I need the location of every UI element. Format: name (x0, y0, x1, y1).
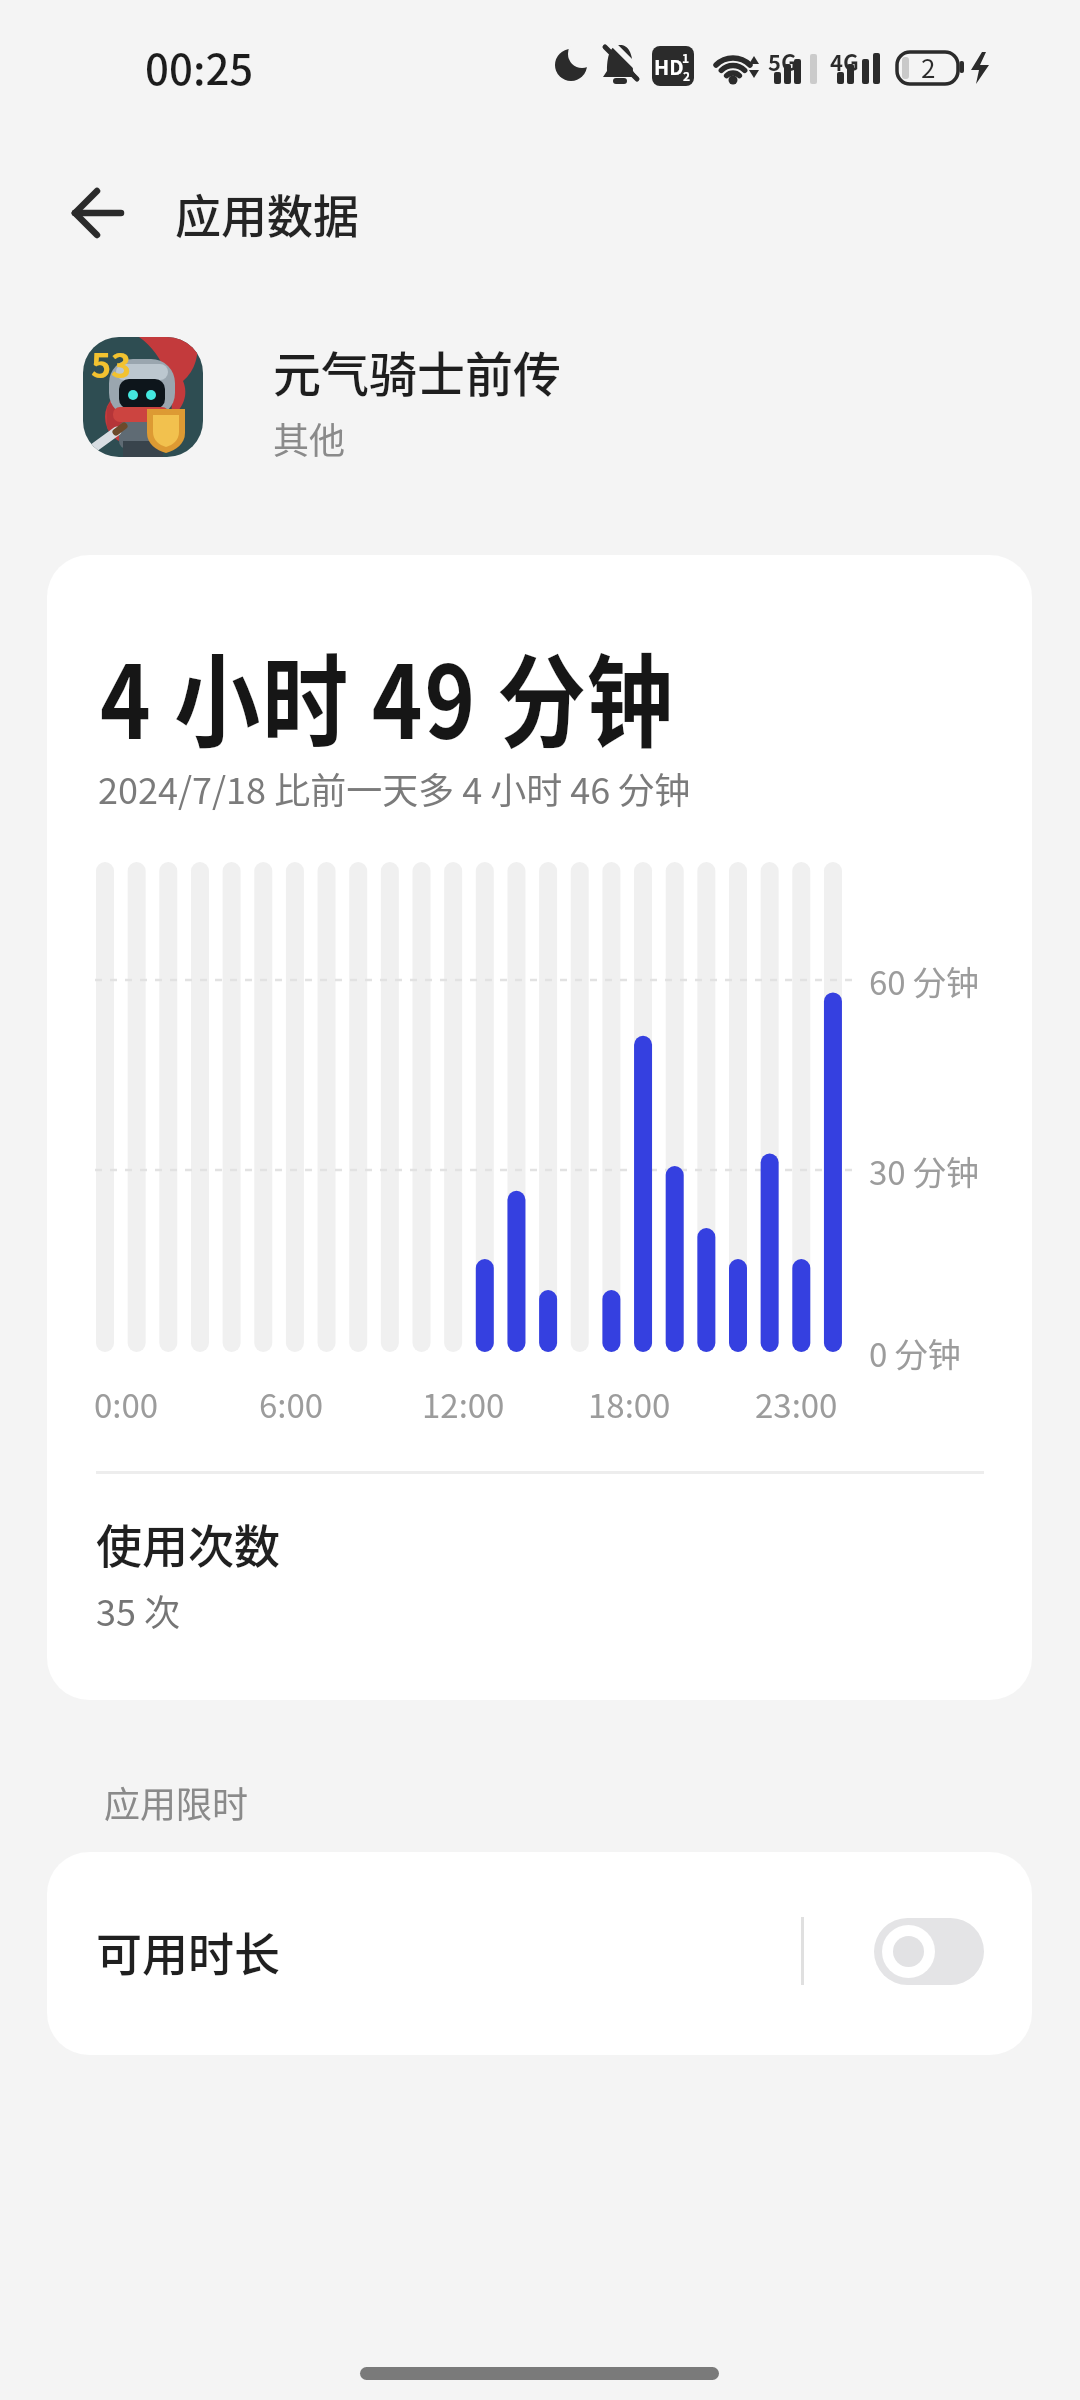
button[interactable] (55, 178, 145, 248)
staticText: 35 次 (96, 1584, 181, 1636)
staticText: 4 小时 49 分钟 (100, 621, 675, 768)
staticText: 使用次数 (96, 1510, 280, 1577)
staticText: 其他 (273, 412, 346, 464)
staticText: 12:00 (422, 1380, 505, 1428)
button[interactable] (874, 1918, 984, 1985)
button[interactable] (83, 330, 683, 464)
staticText: 2 (683, 67, 691, 84)
staticText: 0 分钟 (869, 1329, 961, 1377)
staticText: 6:00 (259, 1380, 324, 1428)
staticText: 30 分钟 (869, 1147, 980, 1195)
button[interactable] (47, 1852, 1032, 2055)
staticText: 应用限时 (104, 1776, 249, 1828)
staticText: 应用数据 (175, 180, 359, 247)
staticText: 5G (768, 45, 797, 77)
staticText: 00:25 (145, 36, 254, 97)
staticText: 53 (91, 339, 132, 388)
staticText: HD (654, 52, 684, 81)
staticText: 4G (830, 45, 859, 77)
staticText: 2024/7/18 比前一天多 4 小时 46 分钟 (98, 762, 691, 814)
staticText: 元气骑士前传 (273, 336, 562, 406)
staticText: 18:00 (588, 1380, 671, 1428)
staticText: 60 分钟 (869, 957, 980, 1005)
staticText: 可用时长 (96, 1918, 280, 1985)
staticText: 2 (921, 48, 936, 86)
staticText: 23:00 (755, 1380, 838, 1428)
staticText: 1 (682, 49, 690, 66)
staticText: 0:00 (94, 1380, 159, 1428)
